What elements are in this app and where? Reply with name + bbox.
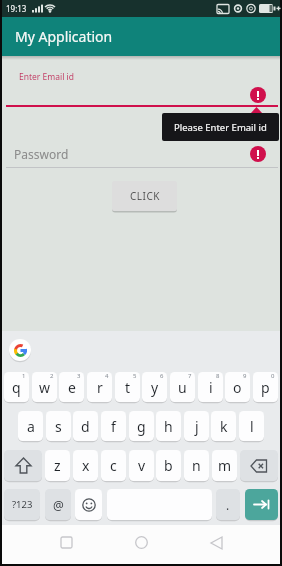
staticText: 0	[271, 372, 275, 380]
staticText: i	[209, 378, 213, 397]
button[interactable]: z	[45, 450, 70, 481]
button[interactable]: r	[87, 372, 112, 402]
button[interactable]	[240, 450, 278, 481]
staticText: z	[54, 456, 61, 475]
button[interactable]: a	[18, 411, 43, 441]
staticText: CLICK	[130, 189, 160, 203]
button[interactable]	[245, 489, 278, 520]
staticText: n	[192, 456, 201, 475]
button[interactable]: l	[239, 411, 264, 441]
staticText: My Application	[15, 27, 113, 46]
button[interactable]: w	[32, 372, 57, 402]
staticText: .	[226, 497, 230, 513]
button[interactable]: .	[216, 489, 240, 520]
button[interactable]: g	[129, 411, 154, 441]
button[interactable]: u	[170, 372, 195, 402]
staticText: u	[178, 378, 187, 397]
staticText: l	[250, 417, 254, 436]
button[interactable]	[121, 523, 161, 562]
staticText: Please Enter Email id	[174, 121, 267, 134]
button[interactable]: d	[73, 411, 98, 441]
button[interactable]: i	[198, 372, 223, 402]
staticText: 7	[188, 372, 192, 380]
staticText: b	[164, 456, 173, 475]
staticText: r	[97, 378, 103, 397]
staticText: Enter Email id	[19, 71, 75, 83]
staticText: 9	[243, 372, 247, 380]
button[interactable]	[9, 339, 31, 361]
button[interactable]: ?123	[4, 489, 40, 520]
staticText: f	[111, 417, 116, 436]
staticText: 5	[133, 372, 137, 380]
staticText: q	[12, 378, 21, 397]
staticText: m	[218, 456, 232, 475]
button[interactable]: CLICK	[112, 181, 177, 211]
staticText: k	[220, 417, 228, 436]
button[interactable]	[4, 450, 42, 481]
button[interactable]: s	[46, 411, 71, 441]
staticText: 6	[160, 372, 164, 380]
button[interactable]: m	[212, 450, 237, 481]
staticText: ?123	[12, 498, 33, 511]
button[interactable]: f	[101, 411, 126, 441]
button[interactable]: b	[156, 450, 181, 481]
staticText: p	[261, 378, 270, 397]
button[interactable]: n	[184, 450, 209, 481]
staticText: g	[137, 417, 146, 436]
button[interactable]: y	[142, 372, 167, 402]
button[interactable]	[75, 489, 102, 520]
staticText: s	[55, 417, 62, 436]
button[interactable]: k	[211, 411, 236, 441]
staticText: 1	[22, 372, 26, 380]
staticText: o	[233, 378, 242, 397]
button[interactable]: h	[156, 411, 181, 441]
staticText: 19:13	[6, 3, 27, 14]
staticText: x	[82, 456, 90, 475]
button[interactable]: o	[225, 372, 250, 402]
staticText: @	[53, 497, 64, 513]
staticText: e	[68, 378, 76, 397]
staticText: w	[39, 378, 51, 397]
button[interactable]	[46, 523, 86, 562]
staticText: d	[81, 417, 90, 436]
button[interactable]: j	[184, 411, 209, 441]
staticText: v	[138, 456, 146, 475]
button[interactable]: Please Enter Email id	[162, 113, 279, 141]
button[interactable]: q	[4, 372, 29, 402]
staticText: t	[125, 378, 131, 397]
button[interactable]: t	[115, 372, 140, 402]
button[interactable]: v	[129, 450, 154, 481]
button[interactable]: x	[73, 450, 98, 481]
button[interactable]	[196, 523, 236, 562]
staticText: Password	[14, 146, 69, 162]
button[interactable]: @	[45, 489, 71, 520]
staticText: c	[110, 456, 117, 475]
staticText: 4	[105, 372, 109, 380]
staticText: a	[27, 417, 35, 436]
staticText: 2	[50, 372, 54, 380]
button[interactable]: e	[59, 372, 84, 402]
staticText: y	[151, 378, 159, 397]
button[interactable]: p	[253, 372, 278, 402]
staticText: j	[195, 417, 199, 436]
button[interactable]: c	[101, 450, 126, 481]
staticText: h	[164, 417, 173, 436]
staticText: 8	[216, 372, 220, 380]
staticText: 3	[77, 372, 81, 380]
